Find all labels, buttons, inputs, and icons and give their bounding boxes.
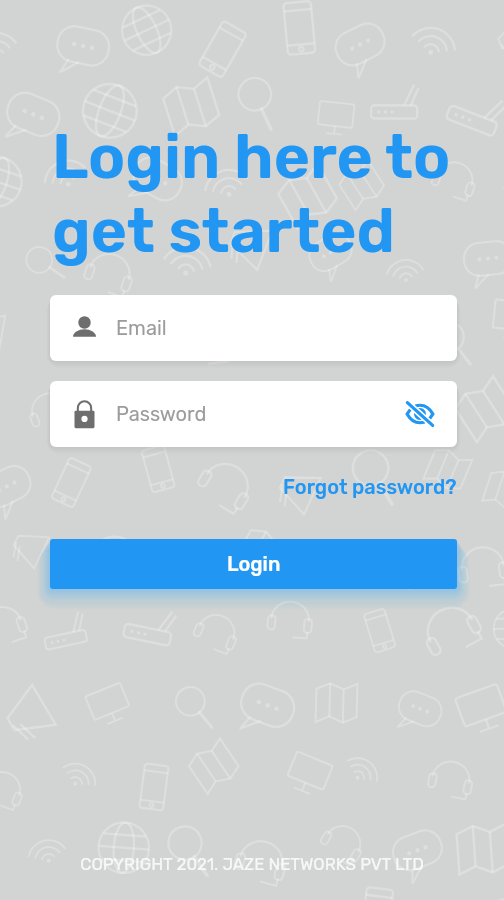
button[interactable]: Forgot password? bbox=[283, 475, 457, 499]
staticText: COPYRIGHT 2021. JAZE NETWORKS PVT LTD bbox=[0, 854, 504, 874]
button[interactable]: Login bbox=[50, 539, 457, 589]
staticText: Login here to get started bbox=[52, 120, 451, 268]
button[interactable]: Email bbox=[50, 295, 457, 361]
button[interactable]: Show password bbox=[403, 397, 437, 431]
staticText: Email bbox=[116, 316, 167, 340]
button[interactable]: Password bbox=[50, 381, 457, 447]
staticText: Forgot password? bbox=[283, 475, 457, 499]
staticText: Login bbox=[227, 552, 281, 576]
staticText: Password bbox=[116, 402, 207, 426]
